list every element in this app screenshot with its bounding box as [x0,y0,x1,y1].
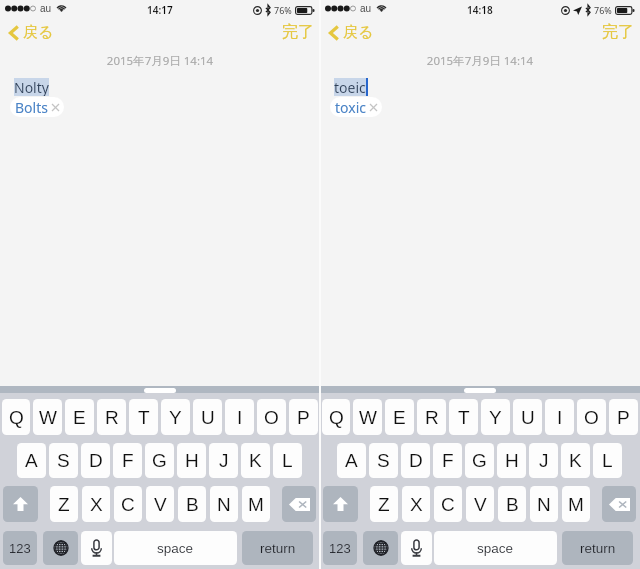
button[interactable]: M [242,486,270,522]
button[interactable]: 完了 [280,20,316,44]
staticText: A [345,450,358,471]
staticText: E [393,407,406,428]
button[interactable]: 戻る [327,21,376,44]
staticText: W [39,407,57,428]
button[interactable]: A [17,443,46,478]
button[interactable]: G [465,443,494,478]
staticText: D [89,450,103,471]
button[interactable]: V [466,486,494,522]
staticText: 123 [9,541,31,556]
button[interactable]: V [146,486,174,522]
button[interactable]: O [257,399,286,435]
button[interactable]: Backspace [282,486,316,522]
staticText: 123 [329,541,351,556]
button[interactable]: P [289,399,318,435]
button[interactable]: toxic [330,97,382,117]
button[interactable]: S [49,443,78,478]
staticText: Z [378,494,390,515]
button[interactable]: Z [50,486,78,522]
button[interactable]: 戻る [7,21,56,44]
button[interactable]: F [113,443,142,478]
button[interactable]: C [434,486,462,522]
staticText: return [580,541,616,556]
button[interactable]: X [402,486,430,522]
button[interactable]: M [562,486,590,522]
staticText: V [154,494,167,515]
button[interactable]: 123 [3,531,37,565]
button[interactable]: C [114,486,142,522]
button[interactable]: Bolts [10,97,64,117]
button[interactable]: T [449,399,478,435]
button[interactable]: Dictation [81,531,112,565]
button[interactable]: Change keyboard [43,531,78,565]
staticText: S [57,450,70,471]
button[interactable]: D [401,443,430,478]
button[interactable]: Y [481,399,510,435]
button[interactable]: Shift [3,486,38,522]
button[interactable]: return [562,531,633,565]
button[interactable]: E [385,399,414,435]
button[interactable]: space [434,531,557,565]
button[interactable]: L [593,443,622,478]
button[interactable]: D [81,443,110,478]
staticText: space [157,541,194,556]
staticText: S [377,450,390,471]
button[interactable]: P [609,399,638,435]
staticText: au [360,3,372,14]
button[interactable]: J [209,443,238,478]
button[interactable]: R [417,399,446,435]
button[interactable]: L [273,443,302,478]
staticText: 14:17 [147,3,173,17]
button[interactable]: H [497,443,526,478]
button[interactable]: Z [370,486,398,522]
button[interactable]: K [561,443,590,478]
button[interactable]: 完了 [600,20,636,44]
button[interactable]: I [225,399,254,435]
button[interactable]: R [97,399,126,435]
button[interactable]: N [530,486,558,522]
button[interactable]: Y [161,399,190,435]
button[interactable]: I [545,399,574,435]
button[interactable]: U [513,399,542,435]
staticText: Y [169,407,182,428]
button[interactable]: G [145,443,174,478]
button[interactable]: B [178,486,206,522]
button[interactable]: W [33,399,62,435]
staticText: F [122,450,134,471]
button[interactable]: Shift [323,486,358,522]
button[interactable]: J [529,443,558,478]
button[interactable]: W [353,399,382,435]
staticText: Z [58,494,70,515]
button[interactable]: Dictation [401,531,432,565]
staticText: X [410,494,423,515]
staticText: T [138,407,150,428]
button[interactable]: Q [2,399,30,435]
button[interactable]: 123 [323,531,357,565]
button[interactable]: space [114,531,237,565]
button[interactable]: T [129,399,158,435]
button[interactable]: K [241,443,270,478]
button[interactable]: H [177,443,206,478]
button[interactable]: A [337,443,366,478]
button[interactable]: B [498,486,526,522]
staticText: au [40,3,52,14]
staticText: U [201,407,215,428]
button[interactable]: Change keyboard [363,531,398,565]
staticText: 76% [274,4,292,16]
staticText: M [248,494,264,515]
button[interactable]: Q [322,399,350,435]
button[interactable]: O [577,399,606,435]
button[interactable]: S [369,443,398,478]
button[interactable]: E [65,399,94,435]
staticText: F [442,450,454,471]
button[interactable]: return [242,531,313,565]
staticText: T [458,407,470,428]
button[interactable]: U [193,399,222,435]
staticText: W [359,407,377,428]
button[interactable]: Backspace [602,486,636,522]
button[interactable]: F [433,443,462,478]
button[interactable]: N [210,486,238,522]
staticText: U [521,407,535,428]
button[interactable]: X [82,486,110,522]
staticText: 14:18 [467,3,493,17]
